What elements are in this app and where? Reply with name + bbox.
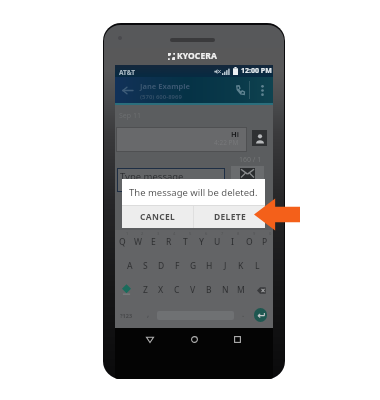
button[interactable]: I: [225, 230, 241, 254]
button[interactable]: DELETE: [194, 206, 265, 228]
staticText: Y: [199, 236, 204, 248]
staticText: 2: [141, 231, 144, 236]
staticText: E: [151, 236, 156, 248]
staticText: Jane Example: [140, 81, 191, 91]
button[interactable]: N: [217, 278, 233, 302]
staticText: A: [127, 260, 133, 272]
staticText: 0: [269, 231, 272, 236]
button[interactable]: Back: [139, 330, 161, 348]
staticText: (570) 600-8969: [140, 93, 182, 101]
staticText: M: [237, 284, 245, 296]
staticText: CANCEL: [140, 211, 176, 223]
staticText: T: [183, 236, 188, 248]
button[interactable]: D: [153, 254, 169, 278]
button[interactable]: P: [257, 230, 273, 254]
staticText: V: [190, 284, 196, 296]
staticText: 3: [157, 231, 160, 236]
button[interactable]: F: [169, 254, 185, 278]
button[interactable]: E: [145, 230, 161, 254]
staticText: G: [190, 260, 197, 272]
button[interactable]: R: [161, 230, 177, 254]
staticText: 12:00 PM: [241, 66, 272, 76]
button[interactable]: G: [185, 254, 201, 278]
staticText: AT&T: [119, 68, 135, 77]
staticText: 4:22 PM: [214, 138, 239, 147]
staticText: KYOCERA: [177, 50, 217, 62]
staticText: B: [206, 284, 212, 296]
staticText: K: [238, 260, 244, 272]
staticText: C: [174, 284, 180, 296]
staticText: Sep 11: [119, 111, 141, 121]
button[interactable]: S: [137, 254, 153, 278]
staticText: S: [143, 260, 148, 272]
button[interactable]: V: [185, 278, 201, 302]
button[interactable]: CANCEL: [122, 206, 193, 228]
staticText: ?123: [120, 312, 133, 319]
button[interactable]: Z: [138, 278, 153, 302]
staticText: F: [175, 260, 180, 272]
staticText: Hi: [231, 129, 239, 139]
staticText: 4: [173, 231, 176, 236]
staticText: Q: [119, 236, 126, 248]
staticText: H: [206, 260, 213, 272]
button[interactable]: Jane Example: [140, 79, 229, 101]
staticText: I: [231, 236, 235, 248]
button[interactable]: L: [249, 254, 265, 278]
staticText: 9: [253, 231, 256, 236]
staticText: O: [246, 236, 253, 248]
button[interactable]: Attach multimedia: [231, 166, 264, 190]
button[interactable]: Call: [229, 77, 251, 103]
staticText: J: [224, 260, 227, 272]
staticText: N: [222, 284, 229, 296]
button[interactable]: Recent apps: [226, 330, 248, 348]
staticText: DELETE: [214, 211, 246, 223]
staticText: R: [166, 236, 172, 248]
button[interactable]: T: [177, 230, 193, 254]
button[interactable]: O: [241, 230, 257, 254]
button[interactable]: W: [130, 230, 145, 254]
button[interactable]: B: [201, 278, 217, 302]
button[interactable]: C: [169, 278, 185, 302]
staticText: ,: [147, 308, 150, 319]
staticText: P: [262, 236, 268, 248]
button[interactable]: X: [153, 278, 169, 302]
button[interactable]: Shift: [115, 278, 138, 302]
staticText: W: [134, 236, 142, 248]
button[interactable]: M: [233, 278, 249, 302]
staticText: The message will be deleted.: [129, 186, 258, 199]
button[interactable]: Back: [115, 77, 140, 103]
button[interactable]: More options: [251, 77, 273, 103]
button[interactable]: U: [209, 230, 225, 254]
button[interactable]: Q: [115, 230, 130, 254]
button[interactable]: Home: [183, 330, 205, 348]
staticText: 7: [221, 231, 224, 236]
staticText: 6: [205, 231, 208, 236]
button[interactable]: H: [201, 254, 217, 278]
button[interactable]: A: [122, 254, 137, 278]
staticText: U: [214, 236, 221, 248]
staticText: 5: [189, 231, 192, 236]
staticText: X: [158, 284, 164, 296]
button[interactable]: Y: [193, 230, 209, 254]
button[interactable]: Hi: [116, 127, 247, 152]
staticText: Z: [143, 284, 148, 296]
staticText: 8: [237, 231, 240, 236]
button[interactable]: Type message: [117, 168, 225, 192]
staticText: L: [255, 260, 260, 272]
staticText: Type message: [120, 170, 184, 183]
button[interactable]: K: [233, 254, 249, 278]
staticText: D: [158, 260, 165, 272]
button[interactable]: Enter: [254, 308, 267, 322]
button[interactable]: Backspace: [249, 278, 273, 302]
staticText: 160 / 1: [239, 155, 262, 165]
button[interactable]: J: [217, 254, 233, 278]
